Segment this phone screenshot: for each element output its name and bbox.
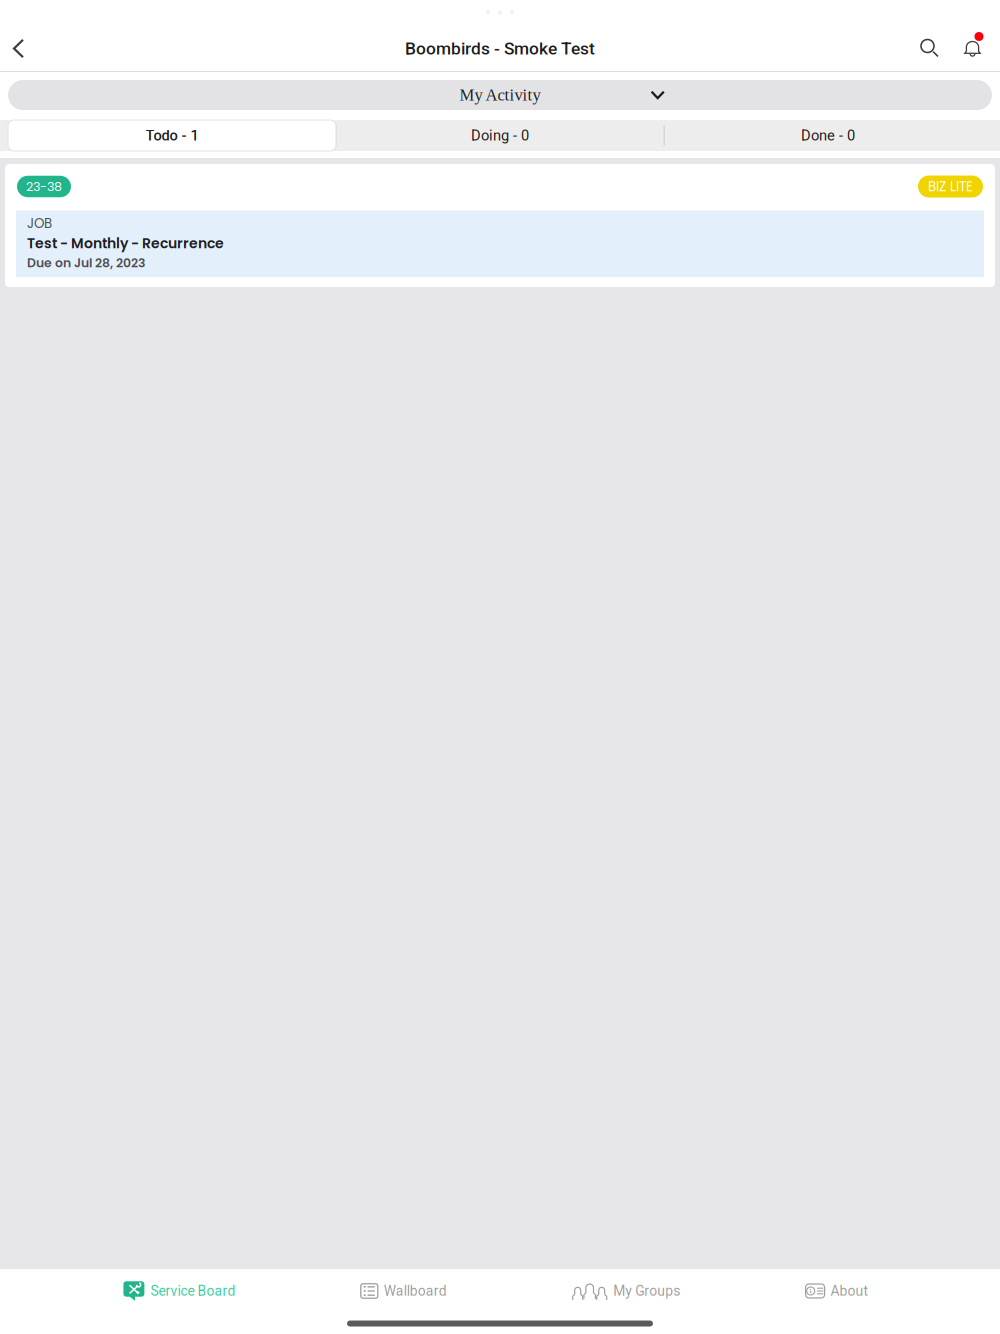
- staticText: Wallboard: [384, 1283, 447, 1299]
- button[interactable]: Todo - 1: [8, 120, 336, 151]
- button[interactable]: Done - 0: [664, 120, 992, 151]
- staticText: My Groups: [613, 1283, 680, 1299]
- staticText: BIZ LITE: [928, 177, 973, 196]
- staticText: About: [831, 1283, 869, 1299]
- button[interactable]: My Activity: [0, 72, 1000, 120]
- staticText: 23-38: [26, 178, 62, 195]
- staticText: Doing - 0: [471, 127, 529, 144]
- button[interactable]: Service Board: [121, 1269, 237, 1313]
- button[interactable]: Notifications: [952, 26, 993, 71]
- staticText: JOB: [27, 214, 52, 233]
- staticText: Test - Monthly - Recurrence: [27, 234, 224, 253]
- button[interactable]: Doing - 0: [336, 120, 664, 151]
- button[interactable]: Search: [908, 26, 952, 71]
- staticText: Service Board: [150, 1283, 235, 1299]
- button[interactable]: My Groups: [570, 1269, 682, 1313]
- button[interactable]: Back: [0, 26, 37, 71]
- button[interactable]: About: [804, 1269, 871, 1313]
- staticText: Todo - 1: [145, 127, 198, 144]
- button[interactable]: Wallboard: [359, 1269, 449, 1313]
- staticText: Boombirds - Smoke Test: [405, 38, 595, 59]
- staticText: Due on Jul 28, 2023: [27, 254, 145, 272]
- staticText: My Activity: [459, 86, 540, 104]
- staticText: Done - 0: [801, 127, 855, 144]
- button[interactable]: 23-38: [0, 158, 1000, 287]
